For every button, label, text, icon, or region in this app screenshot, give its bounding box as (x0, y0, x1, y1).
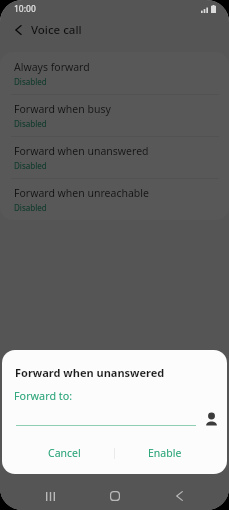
staticText: Cancel (48, 446, 81, 460)
staticText: Enable (148, 446, 182, 460)
button[interactable]: Forward when unanswered (0, 136, 229, 178)
staticText: Forward when unanswered (14, 144, 149, 158)
button[interactable]: Forward when unreachable (0, 178, 229, 220)
staticText: Disabled (14, 160, 47, 171)
staticText: Forward when unanswered (15, 365, 165, 380)
staticText: Disabled (14, 76, 47, 87)
staticText: Forward when busy (14, 102, 111, 116)
staticText: Voice call (31, 22, 82, 38)
button[interactable]: Navigate up (0, 16, 31, 44)
staticText: Disabled (14, 202, 47, 213)
button[interactable]: Back (161, 482, 197, 510)
button[interactable]: Enable (115, 439, 214, 467)
button[interactable]: Home (97, 482, 133, 510)
staticText: Forward when unreachable (14, 186, 149, 200)
button[interactable]: Always forward (0, 52, 229, 94)
button[interactable]: Forward when busy (0, 94, 229, 136)
staticText: 10:00 (14, 3, 36, 15)
button[interactable]: Choose contact (204, 412, 219, 427)
button[interactable]: Recent apps (32, 482, 68, 510)
staticText: Disabled (14, 118, 47, 129)
staticText: Always forward (14, 60, 90, 74)
button[interactable]: Cancel (15, 439, 114, 467)
staticText: Forward to: (14, 388, 73, 403)
